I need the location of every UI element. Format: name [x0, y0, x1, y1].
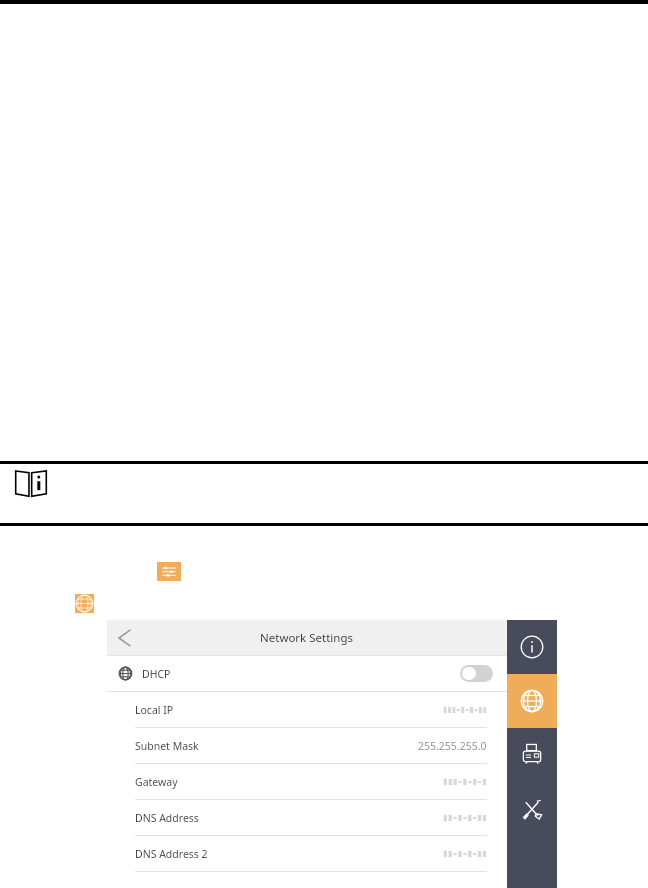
staticText: DNS Address 2	[135, 847, 208, 861]
button[interactable]: Gateway	[107, 764, 507, 800]
staticText: Local IP	[135, 703, 174, 717]
button[interactable]: Information	[507, 620, 557, 674]
staticText: DNS Address	[135, 811, 199, 825]
button[interactable]: Local IP	[107, 692, 507, 728]
button[interactable]: Printer	[507, 728, 557, 782]
button[interactable]: DNS Address	[107, 800, 507, 836]
button[interactable]: Tools	[507, 782, 557, 836]
button[interactable]: Network	[507, 674, 557, 728]
button[interactable]: DHCP toggle	[460, 665, 493, 682]
staticText: DHCP	[142, 667, 171, 681]
staticText: Network Settings	[260, 630, 354, 646]
button[interactable]: Subnet Mask	[107, 728, 507, 764]
staticText: Subnet Mask	[135, 739, 199, 753]
staticText: Gateway	[135, 775, 178, 789]
staticText: 255.255.255.0	[418, 739, 487, 753]
button[interactable]: Back	[107, 621, 141, 655]
button[interactable]: DHCP	[107, 656, 507, 691]
button[interactable]: DNS Address 2	[107, 836, 507, 872]
